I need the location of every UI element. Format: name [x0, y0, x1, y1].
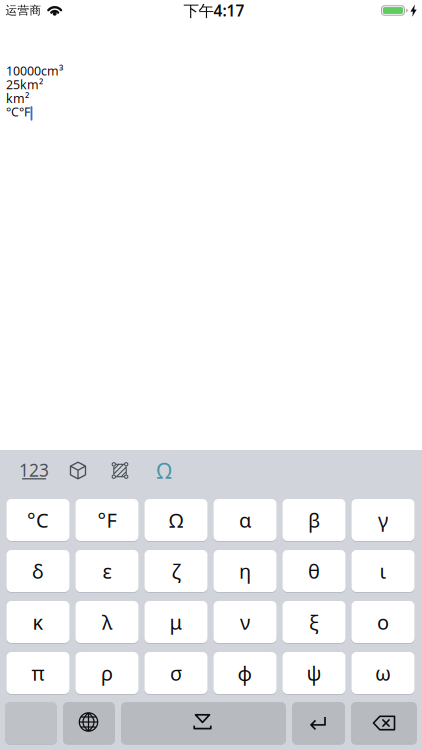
staticText: ψ — [306, 660, 321, 686]
staticText: σ — [170, 660, 182, 686]
staticText: α — [239, 507, 251, 533]
staticText: δ — [32, 558, 44, 584]
staticText: λ — [102, 609, 112, 635]
staticText: φ — [237, 660, 252, 686]
staticText: °C°F — [6, 103, 30, 120]
staticText: 10000cm³ — [6, 62, 63, 79]
staticText: °C — [27, 507, 49, 533]
staticText: γ — [378, 507, 388, 533]
staticText: Ω — [169, 507, 183, 533]
staticText: ν — [240, 609, 250, 635]
staticText: 25km² — [6, 76, 43, 93]
staticText: km² — [6, 90, 29, 107]
staticText: 下午4:17 — [183, 0, 244, 21]
staticText: β — [308, 507, 320, 533]
staticText: θ — [308, 558, 320, 584]
staticText: π — [31, 660, 44, 686]
staticText: ξ — [309, 609, 319, 635]
staticText: ο — [377, 609, 389, 635]
staticText: 运营商 — [5, 3, 41, 18]
staticText: μ — [169, 609, 182, 635]
staticText: ε — [102, 558, 111, 584]
staticText: ρ — [101, 660, 113, 686]
staticText: ζ — [171, 558, 180, 584]
staticText: ω — [375, 660, 391, 686]
staticText: Ω — [156, 456, 171, 485]
staticText: η — [239, 558, 251, 584]
staticText: °F — [97, 507, 116, 533]
staticText: ι — [379, 558, 386, 584]
staticText: κ — [32, 609, 43, 635]
staticText: 123 — [19, 458, 49, 481]
